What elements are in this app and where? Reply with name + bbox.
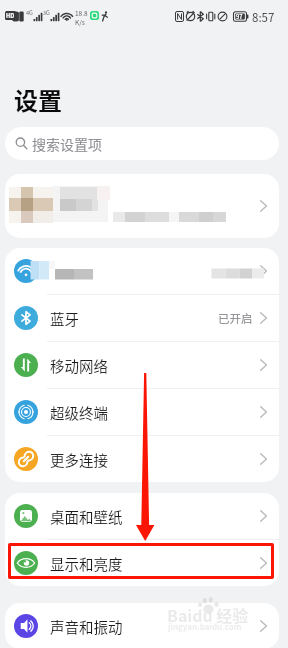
button[interactable]: 搜索设置项	[5, 127, 279, 160]
staticText: 8:57	[252, 9, 275, 26]
staticText: 设置	[14, 82, 62, 117]
button[interactable]: 移动网络	[5, 342, 279, 388]
staticText: 18.8	[75, 8, 88, 17]
staticText: 声音和振动	[50, 616, 123, 637]
staticText: jingyan.baidu.com	[168, 621, 242, 633]
button[interactable]: 显示和亮度	[5, 540, 279, 586]
staticText: 超级终端	[50, 402, 108, 423]
staticText: 更多连接	[50, 449, 108, 470]
staticText: K/s	[75, 17, 85, 26]
staticText: 移动网络	[50, 355, 108, 376]
staticText: 97	[236, 13, 243, 21]
staticText: 蓝牙	[50, 308, 79, 329]
staticText: Baidu 经验	[167, 603, 249, 626]
button[interactable]: 声音和振动	[5, 603, 279, 648]
button[interactable]: 更多连接	[5, 436, 279, 482]
staticText: 桌面和壁纸	[50, 506, 123, 527]
button[interactable]: WLAN	[5, 248, 279, 294]
button[interactable]: 超级终端	[5, 389, 279, 435]
staticText: HD	[6, 12, 15, 20]
button[interactable]: 蓝牙	[5, 295, 279, 341]
staticText: 搜索设置项	[32, 134, 102, 154]
staticText: 已开启	[218, 310, 253, 327]
staticText: 4G	[26, 9, 33, 17]
button[interactable]: 桌面和壁纸	[5, 493, 279, 539]
button[interactable]	[5, 174, 279, 238]
staticText: 显示和亮度	[50, 553, 123, 574]
staticText: 3G	[43, 9, 50, 17]
